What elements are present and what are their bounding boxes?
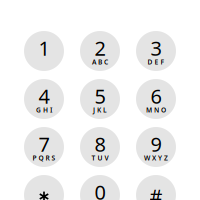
button[interactable]: 8 bbox=[80, 127, 120, 167]
staticText: P Q R S bbox=[32, 154, 55, 162]
button[interactable]: 9 bbox=[136, 127, 176, 167]
staticText: 7 bbox=[38, 131, 49, 157]
staticText: 6 bbox=[150, 83, 161, 109]
button[interactable]: 5 bbox=[80, 79, 120, 119]
staticText: 5 bbox=[94, 83, 105, 109]
staticText: 8 bbox=[94, 131, 105, 157]
button[interactable]: 1 bbox=[24, 31, 64, 71]
button[interactable]: 6 bbox=[136, 79, 176, 119]
staticText: T U V bbox=[91, 154, 108, 162]
staticText: M N O bbox=[146, 106, 166, 114]
staticText: D E F bbox=[147, 58, 164, 66]
button[interactable]: 4 bbox=[24, 79, 64, 119]
staticText: 3 bbox=[150, 35, 161, 61]
button[interactable]: Pound bbox=[136, 175, 176, 200]
button[interactable]: 3 bbox=[136, 31, 176, 71]
button[interactable]: 2 bbox=[80, 31, 120, 71]
staticText: 4 bbox=[38, 83, 49, 109]
staticText: # bbox=[149, 183, 162, 200]
button[interactable]: 7 bbox=[24, 127, 64, 167]
staticText: 0 bbox=[94, 179, 105, 200]
staticText: W X Y Z bbox=[144, 154, 168, 162]
staticText: J K L bbox=[93, 106, 107, 114]
staticText: 1 bbox=[38, 35, 49, 61]
button[interactable]: 0 bbox=[80, 175, 120, 200]
button[interactable]: Star bbox=[24, 175, 64, 200]
staticText: 9 bbox=[150, 131, 161, 157]
staticText: 2 bbox=[94, 35, 105, 61]
staticText: A B C bbox=[92, 58, 108, 66]
staticText: G H I bbox=[36, 106, 52, 114]
